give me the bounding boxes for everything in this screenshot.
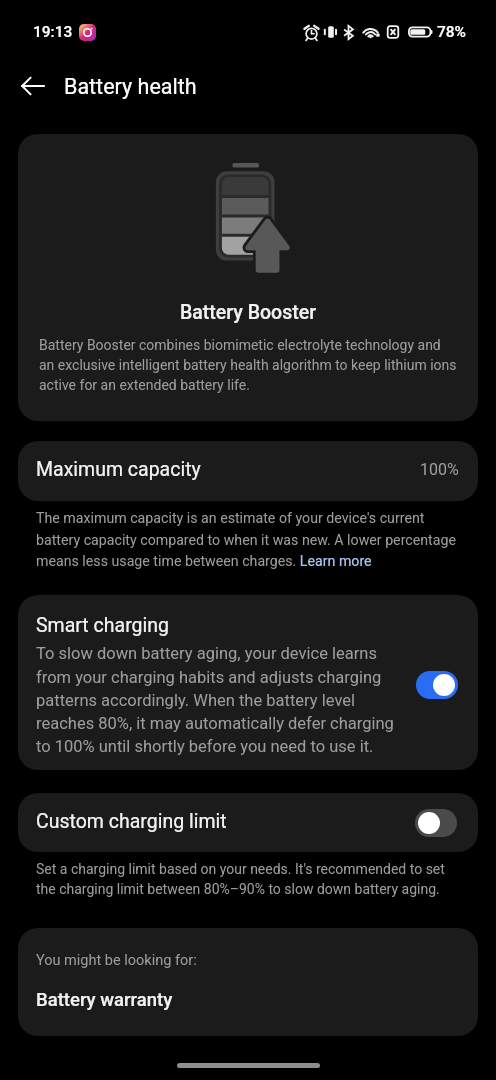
- staticText: 78%: [437, 23, 467, 41]
- staticText: Battery health: [64, 74, 197, 99]
- staticText: Battery warranty: [36, 989, 173, 1011]
- staticText: Smart charging: [36, 614, 169, 637]
- staticText: 100%: [420, 460, 459, 479]
- button[interactable]: Back: [10, 63, 56, 109]
- button[interactable]: Custom charging limit off: [415, 809, 457, 837]
- staticText: The maximum capacity is an estimate of y…: [36, 510, 462, 569]
- button[interactable]: Smart charging on: [416, 671, 458, 699]
- staticText: Custom charging limit: [36, 810, 227, 833]
- staticText: Set a charging limit based on your needs…: [36, 861, 462, 897]
- button[interactable]: Battery warranty: [36, 989, 173, 1011]
- staticText: To slow down battery aging, your device …: [36, 644, 402, 756]
- staticText: You might be looking for:: [36, 952, 197, 969]
- staticText: Battery Booster combines biomimetic elec…: [39, 337, 457, 394]
- staticText: 19:13: [33, 23, 73, 41]
- staticText: Battery Booster: [180, 301, 317, 324]
- staticText: Maximum capacity: [36, 458, 201, 481]
- button[interactable]: Maximum capacity: [18, 441, 478, 501]
- button[interactable]: Custom charging limit: [18, 793, 478, 852]
